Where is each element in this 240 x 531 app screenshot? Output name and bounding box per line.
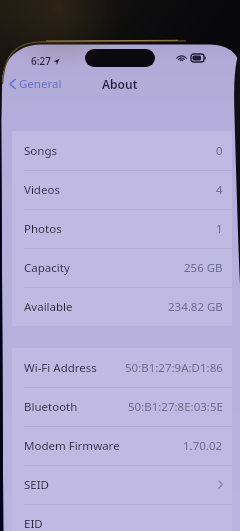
staticText: 256 GB — [184, 260, 223, 276]
staticText: 4 — [216, 182, 223, 198]
button[interactable]: Photos — [12, 209, 232, 248]
button[interactable]: General — [7, 74, 64, 94]
staticText: 6:27 — [31, 54, 51, 68]
button[interactable]: Available — [12, 287, 232, 326]
staticText: 234.82 GB — [168, 299, 223, 315]
staticText: 50:B1:27:9A:D1:86 — [125, 360, 223, 376]
staticText: 1 — [216, 221, 223, 237]
button[interactable]: Videos — [12, 170, 232, 209]
staticText: 0 — [216, 143, 223, 159]
staticText: 1.70.02 — [183, 438, 223, 454]
staticText: 50:B1:27:8E:03:5E — [128, 399, 223, 415]
staticText: Videos — [24, 182, 60, 198]
button[interactable]: Capacity — [12, 248, 232, 287]
button[interactable]: Wi-Fi Address — [12, 348, 232, 387]
staticText: About — [102, 76, 138, 92]
button[interactable]: SEID — [12, 465, 232, 504]
button[interactable]: EID — [12, 504, 232, 531]
staticText: Available — [24, 299, 73, 315]
staticText: Capacity — [24, 260, 70, 276]
staticText: Photos — [24, 221, 62, 237]
staticText: Modem Firmware — [24, 438, 120, 454]
button[interactable]: Bluetooth — [12, 387, 232, 426]
staticText: General — [19, 76, 62, 92]
staticText: EID — [24, 516, 43, 531]
button[interactable]: Songs — [12, 131, 232, 170]
staticText: Bluetooth — [24, 399, 78, 415]
other: Open SEID — [218, 480, 223, 489]
button[interactable]: Modem Firmware — [12, 426, 232, 465]
staticText: Songs — [24, 143, 57, 159]
staticText: SEID — [24, 477, 50, 493]
staticText: Wi-Fi Address — [24, 360, 97, 376]
